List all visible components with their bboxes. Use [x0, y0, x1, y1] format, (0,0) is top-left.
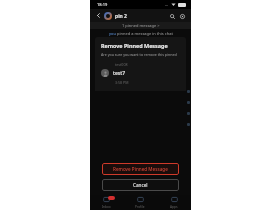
staticText: Remove Pinned Message [113, 166, 168, 172]
staticText: Are you sure you want to remove this pin… [101, 52, 180, 57]
staticText: ... [165, 2, 169, 7]
button[interactable]: Inbox [90, 195, 123, 210]
button[interactable]: Search [167, 11, 177, 21]
staticText: 18:19 [97, 2, 108, 7]
staticText: Cancel [133, 182, 148, 188]
staticText: pin 2 [115, 13, 127, 20]
button[interactable]: Remove Pinned Message [102, 163, 179, 175]
button[interactable]: Settings [177, 11, 187, 21]
staticText: Remove Pinned Message [101, 42, 168, 49]
button[interactable]: Cancel [102, 179, 179, 191]
staticText: pinned a message in this chat [117, 31, 173, 36]
staticText: test7 [113, 70, 125, 77]
staticText: you [109, 31, 117, 36]
staticText: 1 pinned message > [122, 23, 160, 28]
button[interactable]: Apps [157, 195, 191, 210]
staticText: Profile [135, 205, 145, 209]
staticText: Inbox [102, 205, 111, 209]
button[interactable]: pin 2 [104, 12, 167, 20]
button[interactable]: Profile [123, 195, 157, 210]
button[interactable]: 1 pinned message > [90, 22, 191, 37]
staticText: Apps [170, 205, 178, 209]
button[interactable]: Back [94, 11, 103, 20]
staticText: 3:58 PM [115, 80, 129, 85]
staticText: test008 [115, 62, 128, 67]
